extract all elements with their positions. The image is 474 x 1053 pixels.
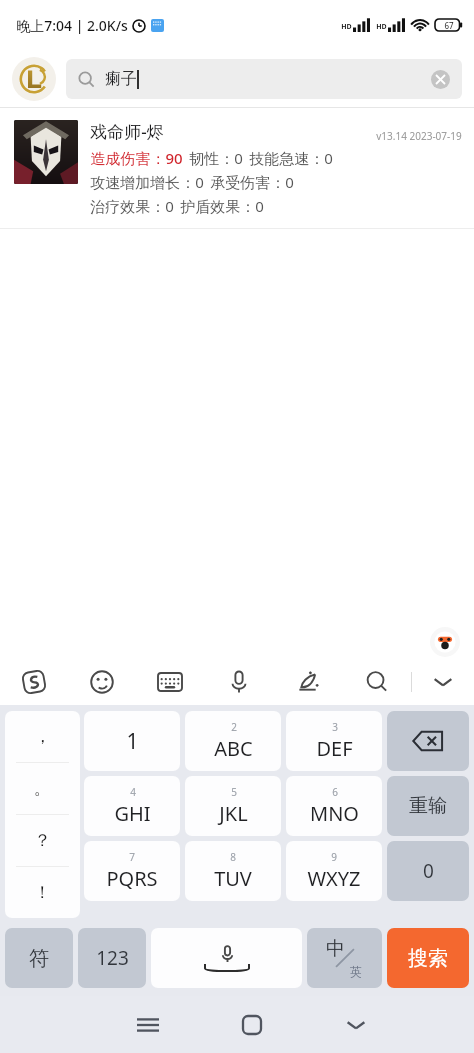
button[interactable]: Search xyxy=(342,659,411,705)
staticText: 搜索 xyxy=(408,946,448,971)
button[interactable]: 6 xyxy=(286,776,382,836)
button[interactable]: 1 xyxy=(84,711,180,771)
staticText: 0 xyxy=(423,858,434,884)
staticText: ABC xyxy=(214,735,253,762)
button[interactable]: Keyboard layout xyxy=(136,659,204,705)
staticText: 重输 xyxy=(409,794,447,818)
staticText: ？ xyxy=(34,830,51,851)
staticText: DEF xyxy=(316,735,353,762)
button[interactable]: 重输 xyxy=(387,776,469,836)
staticText: ！ xyxy=(34,882,51,903)
button[interactable]: Backspace xyxy=(387,711,469,771)
staticText: HD xyxy=(341,22,352,32)
button[interactable]: 7 xyxy=(84,841,180,901)
staticText: 戏命师-烬 xyxy=(90,120,164,143)
staticText: 123 xyxy=(96,945,129,971)
staticText: 英 xyxy=(350,964,362,979)
button[interactable]: Voice input xyxy=(204,659,273,705)
staticText: 攻速增加增长：0 xyxy=(90,172,204,192)
button[interactable]: 戏命师-烬 xyxy=(0,107,474,229)
staticText: PQRS xyxy=(106,865,158,892)
staticText: HD xyxy=(376,22,387,32)
staticText: WXYZ xyxy=(307,865,361,892)
button[interactable]: 瘌子 xyxy=(66,59,462,99)
staticText: v13.14 2023-07-19 xyxy=(376,129,462,143)
button[interactable]: 9 xyxy=(286,841,382,901)
button[interactable]: App logo xyxy=(12,57,56,101)
button[interactable]: 4 xyxy=(84,776,180,836)
button[interactable]: ！ xyxy=(5,867,80,918)
staticText: MNO xyxy=(310,800,359,827)
staticText: 中 xyxy=(326,937,345,961)
staticText: 造成伤害：90 xyxy=(90,148,183,168)
button[interactable]: 符 xyxy=(5,928,73,988)
button[interactable]: 5 xyxy=(185,776,281,836)
staticText: 5 xyxy=(231,785,237,799)
staticText: 2 xyxy=(231,720,237,734)
button[interactable]: 8 xyxy=(185,841,281,901)
button[interactable]: Chinese English toggle xyxy=(307,928,382,988)
staticText: 护盾效果：0 xyxy=(180,196,264,216)
button[interactable]: Recent apps xyxy=(96,996,200,1053)
button[interactable]: Home xyxy=(200,996,304,1053)
staticText: 4 xyxy=(130,785,136,799)
button[interactable]: 0 xyxy=(387,841,469,901)
staticText: 晚上7:04 | 2.0K/s xyxy=(16,16,128,35)
staticText: 符 xyxy=(29,946,49,971)
button[interactable]: Emoji xyxy=(68,659,136,705)
staticText: 9 xyxy=(331,850,337,864)
staticText: 6 xyxy=(332,785,338,799)
button[interactable]: 2 xyxy=(185,711,281,771)
staticText: ， xyxy=(34,726,51,747)
staticText: 承受伤害：0 xyxy=(210,172,294,192)
button[interactable]: Sogou input xyxy=(0,659,68,705)
button[interactable]: ？ xyxy=(5,815,80,867)
button[interactable]: Space xyxy=(151,928,302,988)
button[interactable]: Hide keyboard xyxy=(412,659,474,705)
staticText: 韧性：0 xyxy=(189,148,243,168)
button[interactable]: 。 xyxy=(5,763,80,815)
staticText: 7 xyxy=(129,850,135,864)
button[interactable]: Assistant xyxy=(430,627,460,657)
staticText: 瘌子 xyxy=(105,69,137,89)
staticText: JKL xyxy=(219,800,248,827)
staticText: 治疗效果：0 xyxy=(90,196,174,216)
button[interactable]: Clear xyxy=(431,70,450,89)
button[interactable]: 123 xyxy=(78,928,146,988)
staticText: 1 xyxy=(126,727,139,756)
staticText: 3 xyxy=(332,720,338,734)
staticText: 。 xyxy=(34,778,51,799)
button[interactable]: 3 xyxy=(286,711,382,771)
button[interactable]: 搜索 xyxy=(387,928,469,988)
button[interactable]: ， xyxy=(5,711,80,763)
staticText: 8 xyxy=(230,850,236,864)
staticText: 技能急速：0 xyxy=(249,148,333,168)
staticText: TUV xyxy=(214,865,252,892)
button[interactable]: Back xyxy=(304,996,408,1053)
staticText: 67 xyxy=(444,20,454,31)
button[interactable]: Handwriting xyxy=(273,659,342,705)
staticText: GHI xyxy=(114,800,151,827)
